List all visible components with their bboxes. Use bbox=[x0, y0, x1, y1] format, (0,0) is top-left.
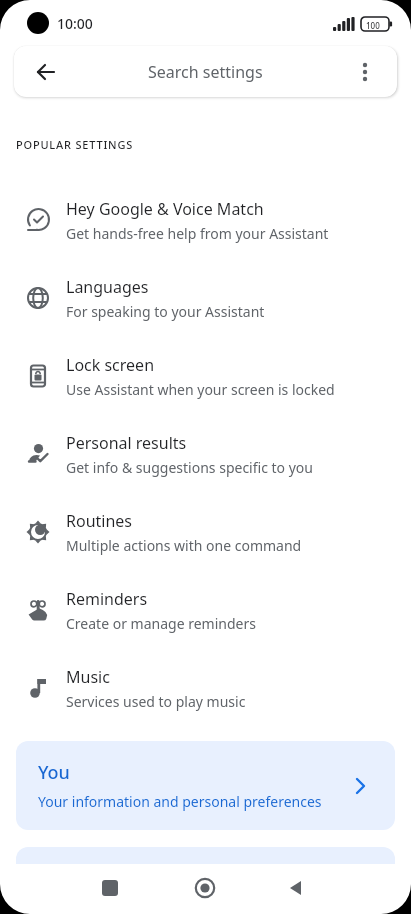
staticText: Personal results bbox=[66, 432, 187, 454]
button[interactable]: Hey Google & Voice Match bbox=[0, 181, 411, 259]
staticText: Reminders bbox=[66, 588, 148, 610]
button[interactable]: Reminders bbox=[0, 571, 411, 649]
button[interactable]: Search settings bbox=[14, 46, 397, 97]
staticText: Hey Google & Voice Match bbox=[66, 198, 264, 220]
staticText: Music bbox=[66, 666, 110, 688]
staticText: Languages bbox=[66, 276, 149, 298]
staticText: Use Assistant when your screen is locked bbox=[66, 380, 335, 399]
button[interactable]: You bbox=[16, 741, 395, 830]
staticText: Get info & suggestions specific to you bbox=[66, 458, 313, 477]
staticText: Get hands-free help from your Assistant bbox=[66, 224, 329, 243]
button[interactable]: Music bbox=[0, 649, 411, 727]
button[interactable]: Lock screen bbox=[0, 337, 411, 415]
staticText: For speaking to your Assistant bbox=[66, 302, 265, 321]
button[interactable]: Languages bbox=[0, 259, 411, 337]
staticText: 100 bbox=[366, 20, 380, 31]
staticText: You bbox=[38, 760, 70, 785]
button[interactable] bbox=[181, 864, 229, 912]
staticText: Search settings bbox=[148, 61, 263, 83]
staticText: Multiple actions with one command bbox=[66, 536, 302, 555]
staticText: Lock screen bbox=[66, 354, 155, 376]
button[interactable] bbox=[86, 864, 134, 912]
staticText: Create or manage reminders bbox=[66, 614, 256, 633]
staticText: 10:00 bbox=[57, 14, 93, 33]
button[interactable] bbox=[272, 864, 320, 912]
button[interactable]: Personal results bbox=[0, 415, 411, 493]
staticText: Routines bbox=[66, 510, 133, 532]
staticText: Your information and personal preference… bbox=[38, 792, 322, 811]
staticText: Services used to play music bbox=[66, 692, 246, 711]
button[interactable]: Routines bbox=[0, 493, 411, 571]
staticText: POPULAR SETTINGS bbox=[16, 137, 134, 152]
